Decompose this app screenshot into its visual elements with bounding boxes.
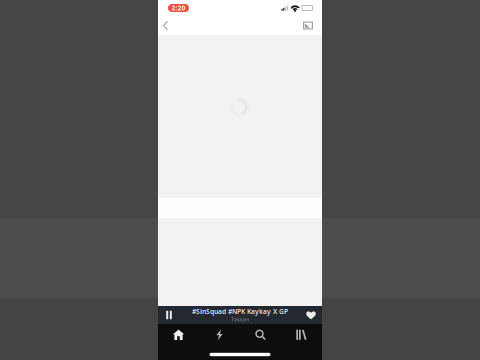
button[interactable]: Home <box>158 325 199 345</box>
button[interactable]: Shorts <box>199 325 240 345</box>
staticText: #SinSquad #NPK Kaykay X GP <box>192 307 288 316</box>
button[interactable]: Search <box>240 325 281 345</box>
staticText: 2:20 <box>171 4 185 12</box>
button[interactable]: Pause <box>160 305 178 324</box>
staticText: Tekken <box>231 316 249 323</box>
button[interactable]: Library <box>281 325 322 345</box>
button[interactable]: Like <box>302 305 320 324</box>
button[interactable]: Cast to device <box>298 16 318 35</box>
button[interactable]: #SinSquad #NPK Kaykay X GP <box>158 306 322 324</box>
button[interactable]: Back <box>159 16 172 35</box>
